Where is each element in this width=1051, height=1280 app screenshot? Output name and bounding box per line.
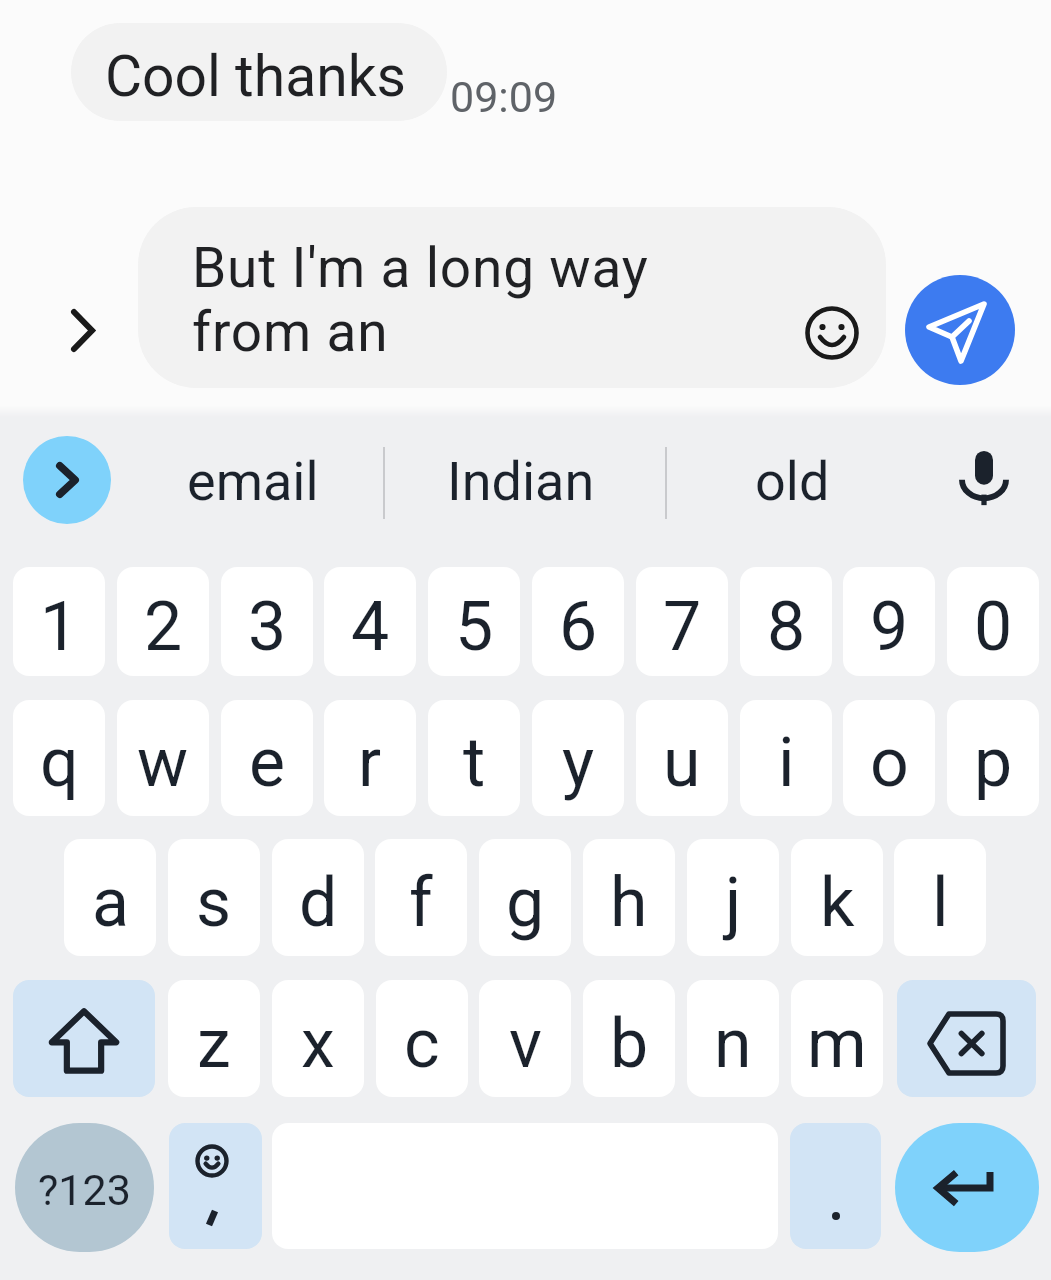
button[interactable]: But I'm a long way <box>138 207 886 388</box>
button[interactable]: w <box>117 700 209 816</box>
button[interactable]: v <box>479 980 571 1097</box>
staticText: e <box>249 723 286 803</box>
button[interactable]: l <box>894 839 986 956</box>
button[interactable]: Send <box>905 275 1015 385</box>
staticText: z <box>197 1004 231 1084</box>
button[interactable]: 4 <box>324 567 416 676</box>
staticText: old <box>755 450 830 513</box>
staticText: d <box>299 863 338 943</box>
button[interactable]: i <box>740 700 832 816</box>
staticText: j <box>725 863 742 943</box>
button[interactable]: old <box>755 450 830 513</box>
staticText: Indian <box>447 450 595 513</box>
button[interactable]: 3 <box>221 567 313 676</box>
staticText: q <box>40 723 79 803</box>
button[interactable]: y <box>532 700 624 816</box>
button[interactable]: 1 <box>13 567 105 676</box>
button[interactable]: Cool thanks <box>71 23 447 121</box>
staticText: k <box>820 863 855 943</box>
staticText: v <box>509 1004 542 1084</box>
staticText: 7 <box>663 587 702 667</box>
staticText: h <box>610 863 648 943</box>
button[interactable]: Emoji <box>799 300 865 366</box>
staticText: m <box>807 1004 867 1084</box>
staticText: 09:09 <box>450 72 558 122</box>
button[interactable]: Voice input <box>951 443 1017 509</box>
button[interactable]: o <box>843 700 935 816</box>
button[interactable]: u <box>636 700 728 816</box>
staticText: ?123 <box>38 1165 131 1215</box>
button[interactable]: Backspace <box>897 980 1036 1097</box>
button[interactable]: x <box>272 980 364 1097</box>
button[interactable]: 7 <box>636 567 728 676</box>
button[interactable]: f <box>375 839 467 956</box>
button[interactable]: z <box>168 980 260 1097</box>
button[interactable]: m <box>791 980 883 1097</box>
staticText: p <box>974 723 1013 803</box>
staticText: y <box>562 723 595 803</box>
button[interactable]: b <box>583 980 675 1097</box>
staticText: w <box>137 723 189 803</box>
staticText: b <box>610 1004 649 1084</box>
button[interactable]: n <box>687 980 779 1097</box>
button[interactable]: 9 <box>843 567 935 676</box>
staticText: t <box>463 723 486 803</box>
button[interactable]: email <box>187 450 319 513</box>
staticText: l <box>932 863 949 943</box>
staticText: from an <box>192 300 389 364</box>
button[interactable]: d <box>272 839 364 956</box>
staticText: i <box>778 723 795 803</box>
button[interactable]: j <box>687 839 779 956</box>
staticText: 3 <box>248 587 287 667</box>
button[interactable]: p <box>947 700 1039 816</box>
button[interactable]: More suggestions <box>23 436 111 524</box>
staticText: Cool thanks <box>105 43 406 110</box>
button[interactable] <box>790 1123 881 1249</box>
button[interactable]: Emoji and comma <box>169 1123 262 1249</box>
button[interactable]: 2 <box>117 567 209 676</box>
button[interactable]: a <box>64 839 156 956</box>
staticText: c <box>404 1004 440 1084</box>
button[interactable]: q <box>13 700 105 816</box>
button[interactable]: t <box>428 700 520 816</box>
staticText: a <box>92 863 129 943</box>
button[interactable]: Expand <box>57 302 113 358</box>
button[interactable]: 5 <box>428 567 520 676</box>
staticText: o <box>870 723 909 803</box>
button[interactable]: 0 <box>947 567 1039 676</box>
staticText: 9 <box>870 587 909 667</box>
button[interactable]: Shift <box>13 980 155 1097</box>
button[interactable]: h <box>583 839 675 956</box>
staticText: u <box>663 723 701 803</box>
staticText: 5 <box>455 587 494 667</box>
staticText: f <box>409 863 433 943</box>
button[interactable]: Enter <box>895 1123 1039 1252</box>
staticText: n <box>714 1004 752 1084</box>
button[interactable]: r <box>324 700 416 816</box>
staticText: r <box>358 723 382 803</box>
button[interactable]: 6 <box>532 567 624 676</box>
button[interactable]: e <box>221 700 313 816</box>
staticText: 2 <box>144 587 183 667</box>
staticText: g <box>506 863 545 943</box>
staticText: 8 <box>767 587 806 667</box>
button[interactable]: g <box>479 839 571 956</box>
staticText: 4 <box>351 587 390 667</box>
staticText: But I'm a long way <box>192 236 649 300</box>
staticText: 1 <box>40 587 79 667</box>
button[interactable]: ?123 <box>15 1123 154 1252</box>
button[interactable]: c <box>376 980 468 1097</box>
staticText: s <box>196 863 232 943</box>
staticText: x <box>301 1004 335 1084</box>
button[interactable]: 8 <box>740 567 832 676</box>
button[interactable]: k <box>791 839 883 956</box>
button[interactable]: s <box>168 839 260 956</box>
staticText: email <box>187 450 319 513</box>
staticText: 6 <box>559 587 598 667</box>
staticText: 0 <box>974 587 1013 667</box>
button[interactable]: Indian <box>447 450 595 513</box>
